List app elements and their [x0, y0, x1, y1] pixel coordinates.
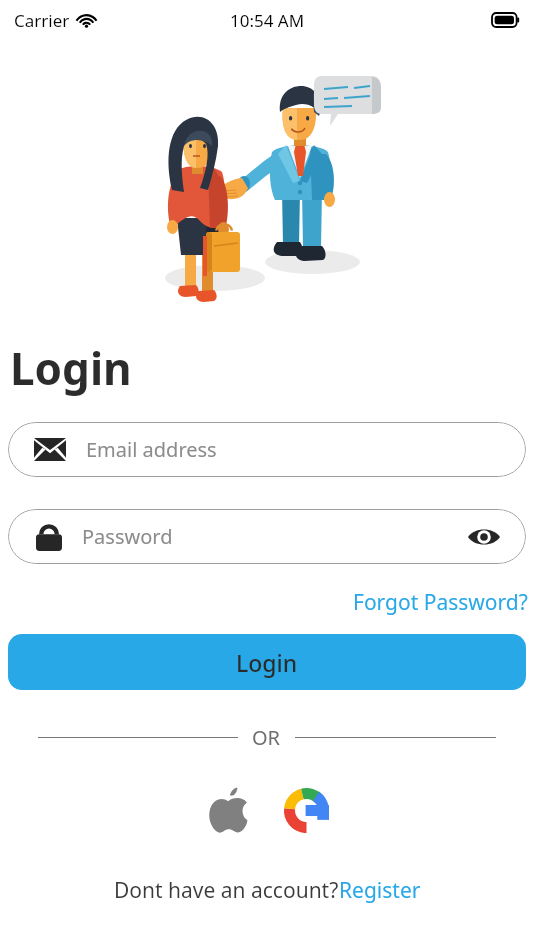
button[interactable]: Forgot Password?	[347, 586, 534, 619]
button[interactable]: Sign in with Apple	[202, 784, 254, 836]
staticText: 10:54 AM	[230, 9, 305, 32]
staticText: Login	[10, 338, 132, 398]
button[interactable]: Login	[8, 634, 526, 690]
staticText: Carrier	[14, 9, 70, 32]
button[interactable]: Email address	[8, 422, 526, 477]
staticText: Dont have an account?	[114, 876, 339, 905]
staticText: Password	[82, 523, 466, 550]
button[interactable]: Show password	[466, 519, 502, 555]
staticText: Login	[236, 647, 298, 678]
button[interactable]: Register	[339, 876, 421, 905]
button[interactable]: Password	[8, 509, 526, 564]
staticText: Email address	[86, 436, 217, 463]
staticText: Forgot Password?	[353, 588, 528, 617]
staticText: OR	[252, 724, 281, 751]
button[interactable]: Sign in with Google	[280, 784, 332, 836]
staticText: Register	[339, 876, 421, 905]
